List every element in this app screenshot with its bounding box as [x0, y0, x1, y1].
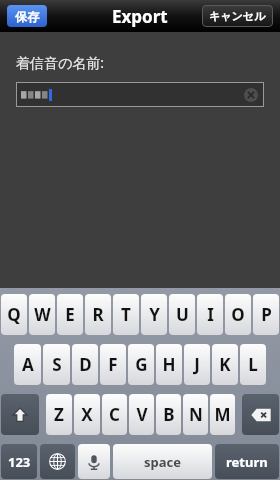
button[interactable]: V: [129, 394, 154, 435]
staticText: M: [214, 403, 231, 426]
staticText: A: [22, 353, 34, 376]
button[interactable]: R: [85, 294, 111, 335]
button[interactable]: Shift: [1, 394, 39, 435]
button[interactable]: U: [169, 294, 195, 335]
button[interactable]: キャンセル: [202, 5, 273, 27]
staticText: K: [219, 353, 231, 376]
button[interactable]: Clear text: [242, 86, 260, 104]
staticText: I: [207, 303, 214, 326]
button[interactable]: return: [215, 444, 279, 479]
staticText: 保存: [15, 9, 39, 24]
staticText: C: [109, 403, 120, 426]
staticText: return: [226, 453, 268, 471]
button[interactable]: H: [156, 344, 182, 385]
staticText: E: [65, 303, 75, 326]
button[interactable]: T: [113, 294, 139, 335]
staticText: U: [176, 303, 189, 326]
button[interactable]: W: [29, 294, 55, 335]
button[interactable]: 123: [1, 444, 37, 479]
button[interactable]: N: [183, 394, 208, 435]
staticText: L: [248, 353, 258, 376]
staticText: T: [121, 303, 131, 326]
button[interactable]: Backspace: [242, 394, 279, 435]
staticText: W: [34, 303, 51, 326]
button[interactable]: space: [113, 444, 212, 479]
staticText: X: [81, 403, 93, 426]
button[interactable]: B: [156, 394, 181, 435]
button[interactable]: E: [57, 294, 83, 335]
staticText: B: [163, 403, 175, 426]
staticText: Q: [7, 303, 21, 326]
staticText: G: [135, 353, 148, 376]
staticText: Z: [54, 403, 64, 426]
button[interactable]: P: [253, 294, 279, 335]
button[interactable]: G: [128, 344, 154, 385]
staticText: 着信音の名前:: [16, 53, 105, 72]
button[interactable]: Switch keyboard: [40, 444, 75, 479]
button[interactable]: Z: [46, 394, 72, 435]
staticText: Y: [149, 303, 160, 326]
button[interactable]: K: [212, 344, 238, 385]
button[interactable]: Clear text: [16, 82, 264, 107]
button[interactable]: A: [14, 344, 41, 385]
staticText: D: [79, 353, 92, 376]
button[interactable]: S: [43, 344, 70, 385]
button[interactable]: 保存: [7, 5, 47, 27]
staticText: Export: [112, 5, 168, 28]
button[interactable]: O: [225, 294, 251, 335]
button[interactable]: J: [184, 344, 210, 385]
button[interactable]: L: [240, 344, 266, 385]
staticText: S: [52, 353, 62, 376]
staticText: J: [194, 353, 200, 376]
staticText: O: [231, 303, 245, 326]
staticText: space: [144, 453, 181, 471]
button[interactable]: Dictation: [78, 444, 110, 479]
button[interactable]: M: [210, 394, 235, 435]
button[interactable]: F: [100, 344, 126, 385]
button[interactable]: Q: [1, 294, 27, 335]
staticText: N: [189, 403, 203, 426]
button[interactable]: X: [74, 394, 100, 435]
staticText: 123: [8, 453, 31, 471]
button[interactable]: C: [102, 394, 127, 435]
staticText: F: [108, 353, 118, 376]
button[interactable]: D: [72, 344, 98, 385]
button[interactable]: I: [197, 294, 223, 335]
staticText: V: [136, 403, 148, 426]
button[interactable]: Y: [141, 294, 167, 335]
staticText: キャンセル: [209, 9, 266, 23]
staticText: H: [162, 353, 176, 376]
staticText: P: [261, 303, 272, 326]
staticText: R: [92, 303, 104, 326]
